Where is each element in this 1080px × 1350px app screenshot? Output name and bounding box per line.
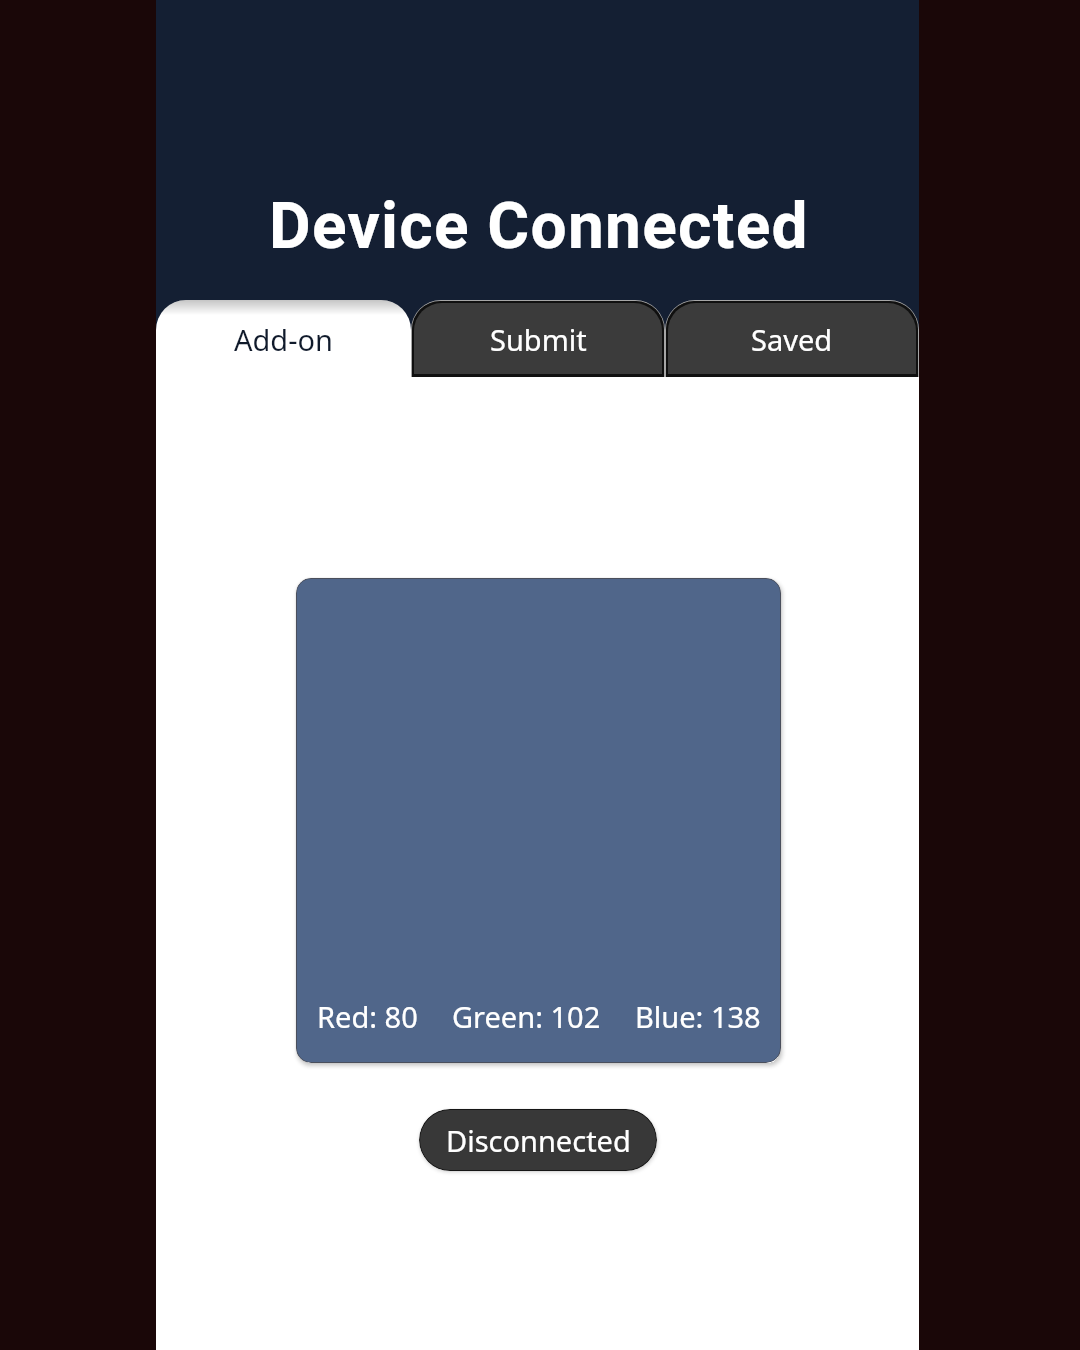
- staticText: Saved: [751, 320, 833, 359]
- staticText: Blue: 138: [635, 997, 761, 1036]
- staticText: Submit: [490, 320, 587, 359]
- staticText: Red: 80: [317, 997, 418, 1036]
- button[interactable]: Current colour preview: [297, 579, 780, 1062]
- button[interactable]: Submit: [411, 300, 665, 377]
- button[interactable]: Add-on: [156, 300, 411, 377]
- button[interactable]: Saved: [665, 300, 919, 377]
- button[interactable]: Disconnected: [420, 1110, 656, 1170]
- staticText: Device Connected: [269, 189, 809, 264]
- staticText: Green: 102: [452, 997, 601, 1036]
- staticText: Disconnected: [446, 1121, 631, 1160]
- staticText: Add-on: [234, 320, 334, 359]
